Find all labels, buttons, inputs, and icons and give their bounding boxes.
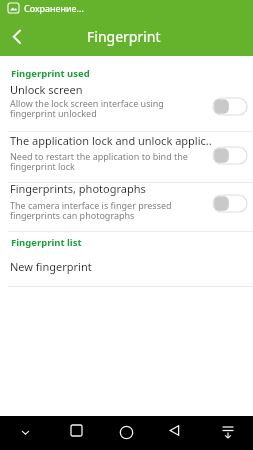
staticText: New fingerprint xyxy=(10,259,92,274)
staticText: Allow the lock screen interface using fi… xyxy=(10,97,164,120)
staticText: Fingerprint xyxy=(87,27,161,46)
button[interactable] xyxy=(161,421,191,445)
button[interactable]: Fingerprints, photographs xyxy=(0,183,253,232)
button[interactable]: The application lock and unlock applic.. xyxy=(0,132,253,183)
staticText: Fingerprint list xyxy=(11,236,82,249)
staticText: Fingerprint used xyxy=(11,67,90,80)
button[interactable] xyxy=(213,147,247,164)
staticText: Сохранение... xyxy=(24,2,84,14)
staticText: Need to restart the application to bind … xyxy=(10,150,188,173)
staticText: The application lock and unlock applic.. xyxy=(10,133,212,148)
staticText: Fingerprints, photographs xyxy=(10,181,146,196)
button[interactable] xyxy=(61,421,91,445)
button[interactable] xyxy=(111,421,141,445)
button[interactable] xyxy=(213,98,247,115)
button[interactable] xyxy=(213,195,247,212)
button[interactable] xyxy=(211,421,245,445)
button[interactable]: New fingerprint xyxy=(0,254,253,286)
staticText: Unlock screen xyxy=(10,82,83,97)
button[interactable]: Unlock screen xyxy=(0,81,253,132)
staticText: The camera interface is finger pressed f… xyxy=(10,199,172,222)
button[interactable] xyxy=(10,421,40,445)
button[interactable] xyxy=(0,17,38,56)
